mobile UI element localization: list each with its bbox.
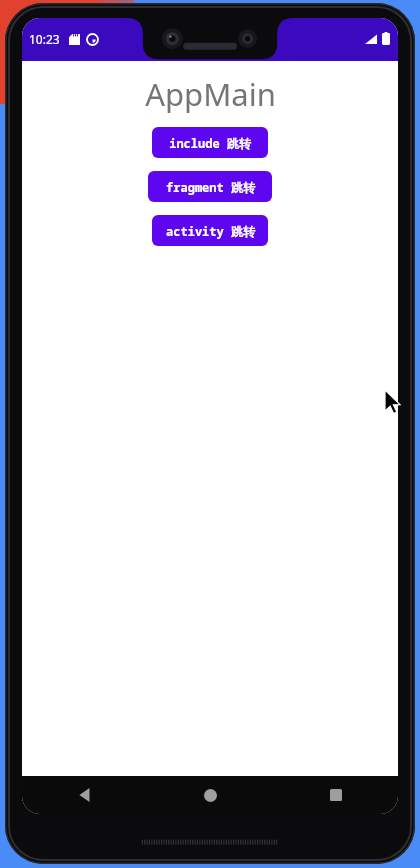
staticText: AppMain	[145, 73, 276, 115]
staticText: fragment 跳转	[166, 179, 255, 195]
staticText: include 跳转	[169, 135, 251, 151]
staticText: 10:23	[29, 31, 60, 47]
button[interactable]: activity 跳转	[152, 215, 268, 246]
button[interactable]: include 跳转	[152, 127, 268, 158]
button[interactable]: Home	[148, 776, 273, 814]
button[interactable]: Recent apps	[273, 776, 398, 814]
staticText: activity 跳转	[166, 223, 255, 239]
button[interactable]: Back	[22, 776, 148, 814]
button[interactable]: fragment 跳转	[148, 171, 272, 202]
